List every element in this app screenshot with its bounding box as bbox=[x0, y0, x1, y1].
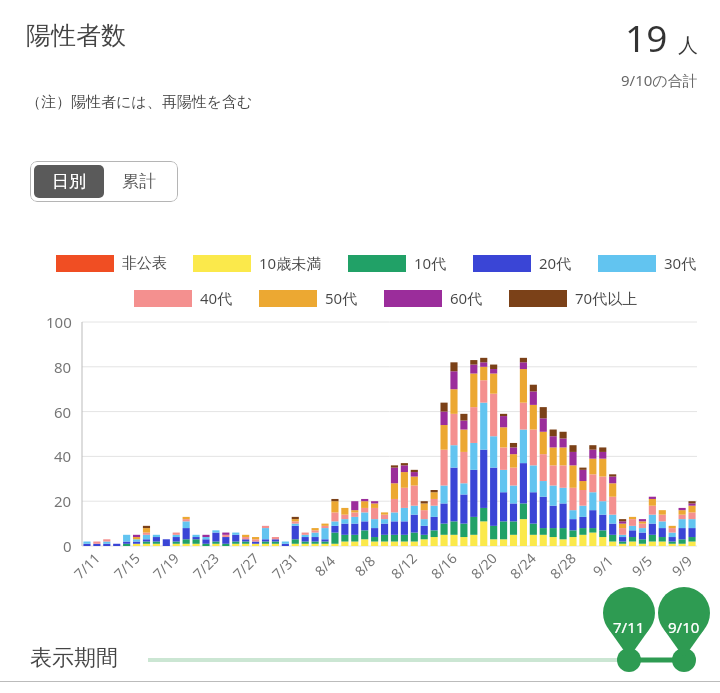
staticText: 40代 bbox=[200, 288, 233, 308]
staticText: 陽性者数 bbox=[26, 20, 126, 51]
staticText: 40 bbox=[54, 446, 72, 466]
staticText: 100 bbox=[46, 312, 72, 332]
staticText: 70代以上 bbox=[575, 288, 638, 308]
staticText: 8/12 bbox=[387, 548, 421, 583]
button[interactable]: 10代 bbox=[348, 253, 447, 273]
staticText: 0 bbox=[63, 536, 72, 556]
staticText: 人 bbox=[678, 33, 698, 58]
staticText: 60 bbox=[54, 402, 72, 422]
staticText: 累計 bbox=[122, 171, 156, 192]
button[interactable]: 9/10 bbox=[658, 601, 710, 653]
staticText: 50代 bbox=[325, 288, 358, 308]
other: 表示期間スライダー bbox=[0, 0, 720, 693]
staticText: 8/8 bbox=[350, 551, 379, 580]
staticText: 80 bbox=[54, 357, 72, 377]
staticText: （注）陽性者には、再陽性を含む bbox=[26, 93, 253, 112]
staticText: 9/9 bbox=[667, 551, 696, 580]
staticText: 7/11 bbox=[613, 617, 645, 637]
button[interactable]: 10歳未満 bbox=[193, 253, 322, 273]
staticText: 日別 bbox=[52, 171, 86, 192]
button[interactable]: 非公表 bbox=[56, 254, 167, 273]
staticText: 7/19 bbox=[149, 548, 183, 583]
button[interactable]: 日別 bbox=[34, 165, 104, 198]
staticText: 30代 bbox=[664, 253, 697, 273]
staticText: 10歳未満 bbox=[259, 253, 322, 273]
staticText: 9/10の合計 bbox=[621, 70, 698, 90]
staticText: 表示期間 bbox=[30, 644, 118, 672]
staticText: 9/10 bbox=[668, 617, 700, 637]
button[interactable]: 70代以上 bbox=[509, 288, 638, 308]
button[interactable]: 7/11 bbox=[603, 601, 655, 653]
button[interactable]: 20代 bbox=[473, 253, 572, 273]
button[interactable]: 40代 bbox=[134, 288, 233, 308]
staticText: 7/15 bbox=[110, 548, 144, 583]
staticText: 7/23 bbox=[189, 548, 223, 583]
staticText: 7/11 bbox=[70, 548, 104, 583]
staticText: 9/5 bbox=[627, 551, 656, 580]
staticText: 非公表 bbox=[122, 254, 167, 273]
staticText: 8/20 bbox=[467, 548, 501, 583]
staticText: 8/28 bbox=[546, 548, 580, 583]
button[interactable]: 30代 bbox=[598, 253, 697, 273]
button[interactable]: 累計 bbox=[104, 165, 174, 198]
staticText: 19 bbox=[625, 12, 668, 62]
staticText: 8/16 bbox=[427, 548, 461, 583]
button[interactable]: 60代 bbox=[384, 288, 483, 308]
staticText: 60代 bbox=[450, 288, 483, 308]
staticText: 7/31 bbox=[268, 548, 302, 583]
staticText: 7/27 bbox=[229, 548, 263, 583]
button[interactable]: 50代 bbox=[259, 288, 358, 308]
staticText: 8/24 bbox=[506, 548, 540, 583]
staticText: 20 bbox=[54, 491, 72, 511]
staticText: 10代 bbox=[414, 253, 447, 273]
staticText: 20代 bbox=[539, 253, 572, 273]
staticText: 8/4 bbox=[310, 551, 339, 580]
staticText: 9/1 bbox=[588, 551, 617, 580]
